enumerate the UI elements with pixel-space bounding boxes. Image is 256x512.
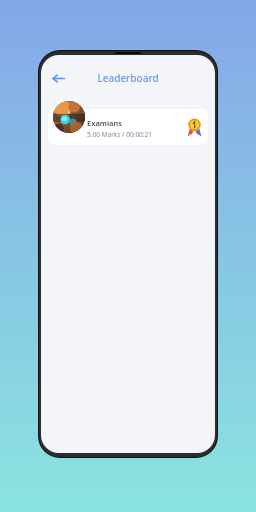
button[interactable]: Examians [48,101,208,149]
other: Rank 1 medal [187,118,202,137]
staticText: 5.00 Marks / 00:00:21 [87,130,152,139]
staticText: Leaderboard [97,71,159,85]
staticText: Examians [87,118,122,128]
button[interactable]: Back [47,67,69,89]
